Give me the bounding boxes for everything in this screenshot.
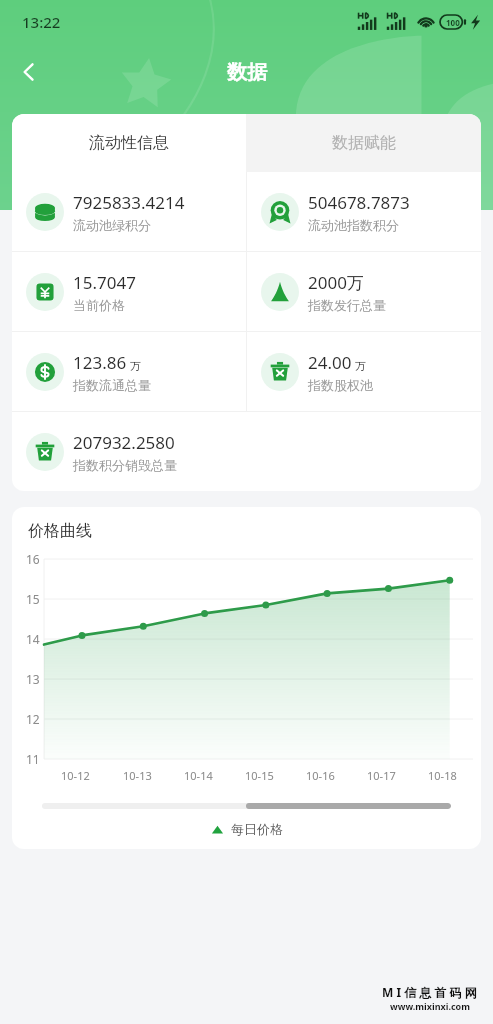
staticText: 13:22 (22, 12, 61, 32)
staticText: 15.7047 (73, 271, 136, 294)
button[interactable]: 504678.7873 (247, 172, 481, 251)
staticText: 指数股权池 (308, 377, 373, 393)
staticText: 指数发行总量 (308, 297, 386, 313)
staticText: 万 (355, 359, 366, 373)
staticText: 指数积分销毁总量 (73, 457, 177, 473)
staticText: M I 信 息 首 码 网 (382, 984, 477, 1000)
staticText: 10-16 (306, 768, 335, 783)
staticText: 10-18 (428, 768, 457, 783)
staticText: 10-12 (61, 768, 90, 783)
staticText: 10-15 (245, 768, 274, 783)
staticText: 流动池指数积分 (308, 217, 399, 233)
staticText: 7925833.4214 (73, 191, 185, 214)
button[interactable]: 24.00 (247, 332, 481, 411)
staticText: 12 (26, 711, 40, 727)
staticText: 每日价格 (231, 821, 283, 837)
staticText: 504678.7873 (308, 191, 410, 214)
staticText: 123.86 (73, 351, 127, 374)
staticText: 当前价格 (73, 297, 125, 313)
staticText: 14 (26, 631, 40, 647)
staticText: 数据 (227, 60, 267, 85)
staticText: 207932.2580 (73, 431, 175, 454)
staticText: 16 (26, 551, 40, 567)
staticText: 10-13 (123, 768, 152, 783)
button[interactable]: 2000万 (247, 252, 481, 331)
staticText: 24.00 (308, 351, 352, 374)
staticText: 100 (446, 17, 460, 28)
staticText: 13 (26, 671, 40, 687)
staticText: www.mixinxi.com (390, 1000, 470, 1012)
staticText: 11 (26, 751, 40, 767)
staticText: 10-14 (184, 768, 213, 783)
button[interactable]: 207932.2580 (12, 412, 481, 491)
button[interactable]: 7925833.4214 (12, 172, 246, 251)
staticText: 2000万 (308, 271, 364, 294)
staticText: 10-17 (367, 768, 396, 783)
button[interactable]: 123.86 (12, 332, 246, 411)
button[interactable]: 15.7047 (12, 252, 246, 331)
staticText: 流动性信息 (89, 133, 169, 153)
staticText: 15 (26, 591, 40, 607)
staticText: 万 (130, 359, 141, 373)
staticText: 价格曲线 (28, 521, 92, 541)
button[interactable]: 数据赋能 (246, 114, 481, 172)
staticText: 指数流通总量 (73, 377, 151, 393)
staticText: 流动池绿积分 (73, 217, 151, 233)
staticText: 数据赋能 (332, 133, 396, 153)
button[interactable]: 流动性信息 (12, 114, 246, 172)
button[interactable]: Back (6, 49, 52, 95)
